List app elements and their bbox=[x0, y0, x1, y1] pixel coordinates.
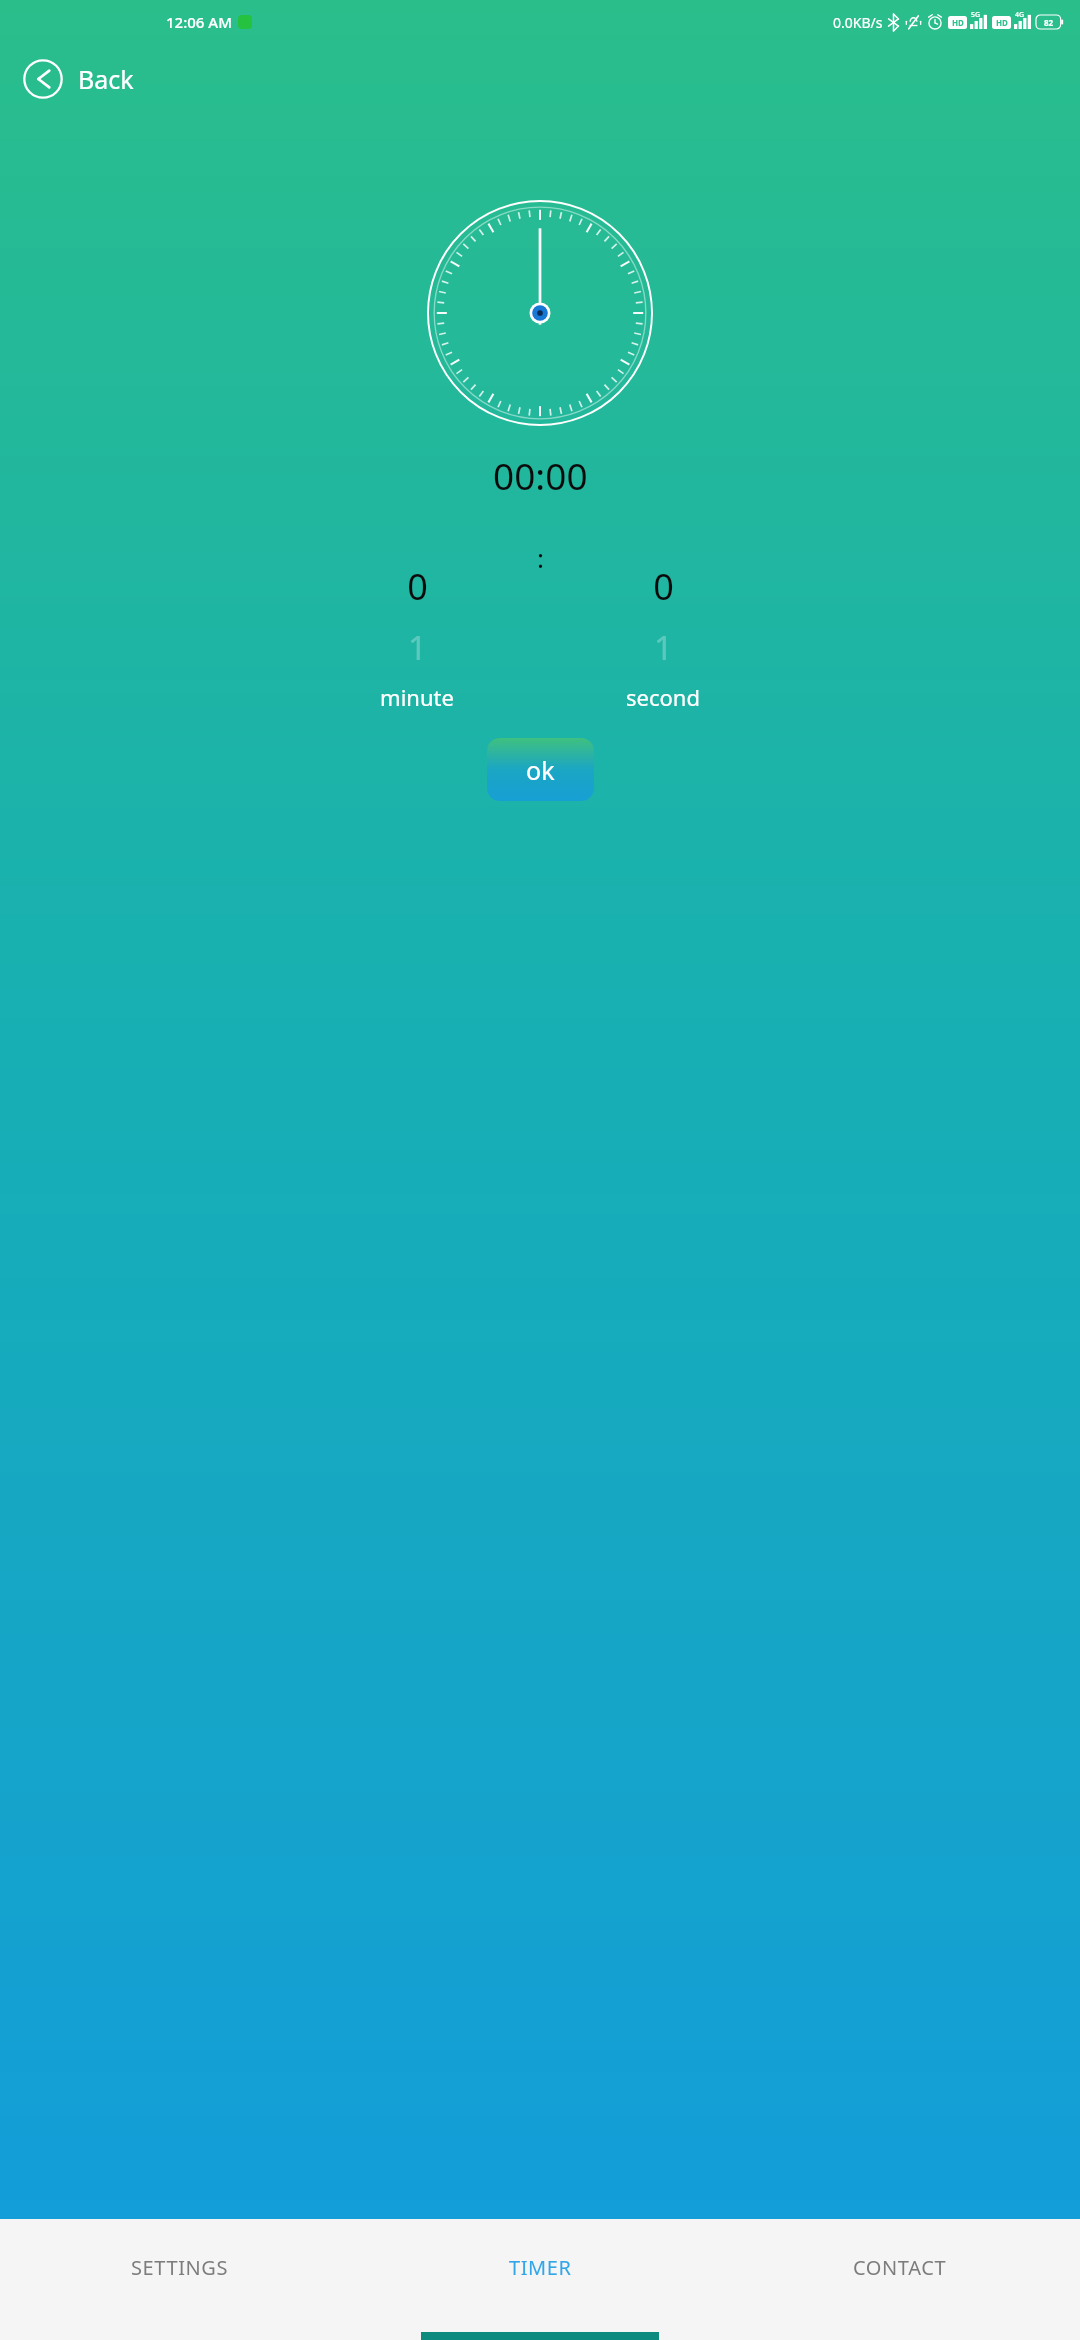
button[interactable]: CONTACT bbox=[720, 2219, 1080, 2315]
staticText: 4G bbox=[1015, 10, 1025, 20]
staticText: Back bbox=[78, 62, 134, 96]
staticText: ok bbox=[526, 753, 555, 787]
button[interactable]: SETTINGS bbox=[0, 2219, 360, 2315]
other: Back bbox=[22, 58, 64, 100]
staticText: HD bbox=[952, 17, 964, 28]
button[interactable]: 0 bbox=[322, 536, 512, 712]
staticText: 0 bbox=[653, 562, 674, 611]
staticText: 0 bbox=[407, 562, 428, 611]
button[interactable]: 0 bbox=[568, 536, 758, 712]
staticText: 00:00 bbox=[493, 450, 588, 500]
staticText: 5G bbox=[971, 10, 981, 20]
staticText: CONTACT bbox=[853, 2254, 947, 2281]
staticText: 1 bbox=[654, 625, 673, 670]
staticText: second bbox=[626, 682, 700, 712]
staticText: SETTINGS bbox=[131, 2254, 229, 2281]
staticText: : bbox=[537, 540, 544, 575]
staticText: 12:06 AM bbox=[166, 12, 232, 32]
button[interactable]: ok bbox=[487, 738, 594, 801]
staticText: HD bbox=[996, 17, 1008, 28]
staticText: minute bbox=[380, 682, 454, 712]
button[interactable]: TIMER bbox=[360, 2219, 720, 2315]
staticText: 1 bbox=[408, 625, 427, 670]
staticText: TIMER bbox=[509, 2254, 572, 2281]
button[interactable]: Back bbox=[22, 54, 148, 104]
staticText: 0.0KB/s bbox=[833, 13, 883, 32]
staticText: 82 bbox=[1044, 17, 1054, 28]
